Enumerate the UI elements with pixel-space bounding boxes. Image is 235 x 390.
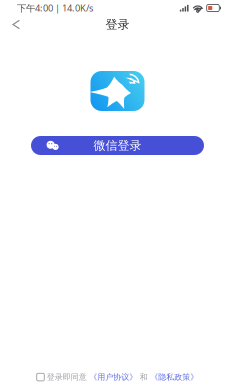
button[interactable]: Agree to terms xyxy=(37,373,44,381)
staticText: 登录 xyxy=(105,17,129,32)
button[interactable]: 《隐私政策》 xyxy=(150,372,198,382)
staticText: 下午4:00 | 14.0K/s xyxy=(17,2,93,14)
staticText: 微信登录 xyxy=(93,138,141,153)
staticText: 和 xyxy=(140,372,148,382)
staticText: 登录即同意 xyxy=(47,372,87,382)
staticText: 《隐私政策》 xyxy=(150,372,198,382)
button[interactable]: 《用户协议》 xyxy=(89,372,137,382)
button[interactable]: Back xyxy=(0,16,28,33)
staticText: 《用户协议》 xyxy=(89,372,137,382)
button[interactable]: 微信登录 xyxy=(31,136,204,155)
